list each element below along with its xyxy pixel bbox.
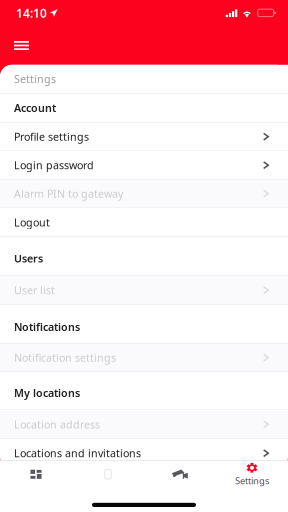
staticText: Profile settings xyxy=(14,130,89,144)
button[interactable]: User list xyxy=(0,276,288,305)
button[interactable]: Settings xyxy=(216,461,288,488)
button[interactable]: Login password xyxy=(0,151,288,180)
button[interactable]: Dashboard xyxy=(0,461,72,488)
button[interactable]: Profile settings xyxy=(0,123,288,151)
button[interactable]: Cameras xyxy=(144,461,216,488)
staticText: Notification settings xyxy=(14,350,116,365)
staticText: Settings xyxy=(235,474,269,487)
staticText: User list xyxy=(14,283,55,297)
button[interactable]: Logout xyxy=(0,208,288,237)
button[interactable]: Menu xyxy=(0,31,41,58)
staticText: Account xyxy=(14,101,56,115)
staticText: Logout xyxy=(14,215,50,229)
staticText: Settings xyxy=(14,72,56,86)
staticText: My locations xyxy=(14,386,80,400)
staticText: Login password xyxy=(14,158,94,172)
staticText: 14:10 xyxy=(16,5,47,21)
button[interactable]: Location address xyxy=(0,410,288,439)
staticText: Location address xyxy=(14,417,100,431)
staticText: Alarm PIN to gateway xyxy=(14,187,123,201)
button[interactable]: Alarm PIN to gateway xyxy=(0,180,288,208)
button[interactable]: Notification settings xyxy=(0,344,288,372)
staticText: Notifications xyxy=(14,320,80,334)
staticText: Users xyxy=(14,251,43,265)
staticText: Locations and invitations xyxy=(14,446,141,460)
button[interactable]: Locations and invitations xyxy=(0,439,288,468)
